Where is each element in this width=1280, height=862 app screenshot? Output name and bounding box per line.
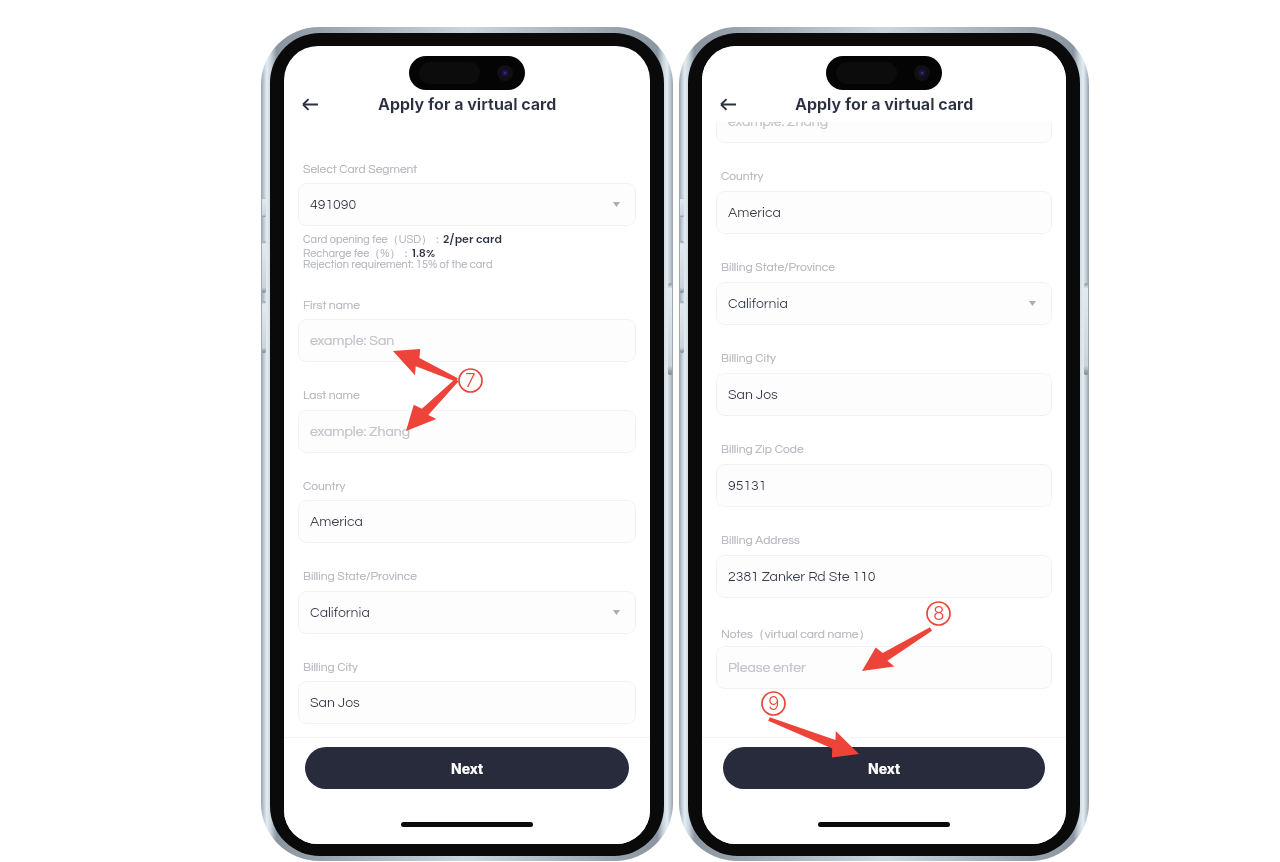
staticText: California — [728, 297, 788, 311]
staticText: Next — [451, 760, 484, 777]
staticText: 2/per card — [443, 231, 502, 246]
staticText: Select Card Segment — [303, 163, 418, 175]
staticText: America — [728, 206, 781, 220]
staticText: example: Zhang — [728, 115, 829, 129]
button[interactable]: California — [298, 591, 636, 634]
button[interactable]: Next — [723, 747, 1045, 789]
staticText: 7 — [465, 369, 476, 392]
button[interactable]: Please enter — [716, 646, 1052, 689]
button[interactable]: America — [298, 500, 636, 543]
staticText: Billing City — [721, 352, 776, 364]
staticText: 491090 — [310, 198, 357, 212]
staticText: Billing State/Province — [303, 570, 418, 582]
staticText: First name — [303, 299, 360, 311]
staticText: 8 — [933, 602, 945, 625]
staticText: Please enter — [728, 661, 806, 675]
staticText: Billing Zip Code — [721, 443, 804, 455]
staticText: Country — [303, 480, 346, 492]
button[interactable]: 2381 Zanker Rd Ste 110 — [716, 555, 1052, 598]
button[interactable]: Next — [305, 747, 629, 789]
button[interactable]: San Jos — [298, 681, 636, 724]
staticText: California — [310, 606, 370, 620]
staticText: Country — [721, 170, 764, 182]
staticText: Billing State/Province — [721, 261, 836, 273]
staticText: Last name — [303, 389, 360, 401]
button[interactable]: Back — [705, 88, 737, 120]
staticText: 9 — [768, 692, 780, 715]
staticText: Notes（virtual card name） — [721, 626, 871, 641]
staticText: Card opening fee（USD）： — [303, 232, 443, 246]
staticText: 2381 Zanker Rd Ste 110 — [728, 570, 876, 584]
staticText: Next — [868, 760, 901, 777]
staticText: Rejection requirement: 15% of the card — [303, 259, 493, 270]
staticText: 1.8% — [412, 245, 436, 260]
button[interactable]: example: San — [298, 319, 636, 362]
staticText: Apply for a virtual card — [378, 94, 557, 113]
staticText: Apply for a virtual card — [795, 94, 974, 113]
staticText: San Jos — [310, 696, 360, 710]
staticText: example: San — [310, 334, 395, 348]
staticText: America — [310, 515, 363, 529]
staticText: Billing City — [303, 661, 358, 673]
staticText: San Jos — [728, 388, 778, 402]
button[interactable]: 95131 — [716, 464, 1052, 507]
button[interactable]: 491090 — [298, 183, 636, 226]
staticText: example: Zhang — [310, 425, 411, 439]
button[interactable]: San Jos — [716, 373, 1052, 416]
staticText: Recharge fee（%）： — [303, 246, 412, 260]
button[interactable]: Back — [287, 88, 319, 120]
button[interactable]: example: Zhang — [716, 100, 1052, 143]
button[interactable]: example: Zhang — [298, 410, 636, 453]
button[interactable]: America — [716, 191, 1052, 234]
staticText: Billing Address — [721, 534, 800, 546]
staticText: 95131 — [728, 479, 767, 493]
button[interactable]: California — [716, 282, 1052, 325]
